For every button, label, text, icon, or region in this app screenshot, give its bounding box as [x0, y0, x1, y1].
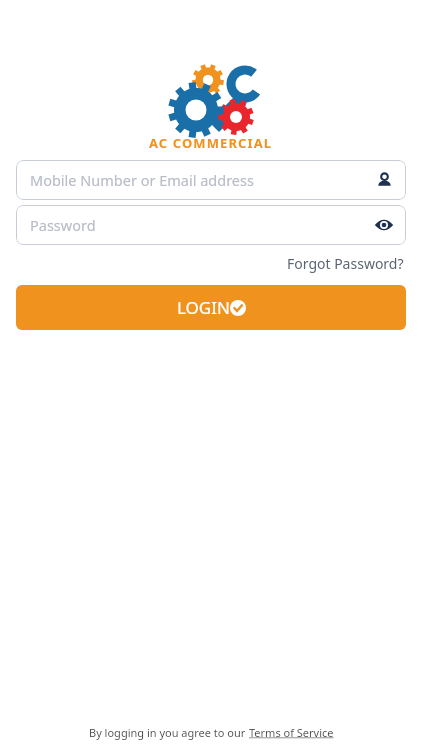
- staticText: By logging in you agree to our: [89, 725, 249, 740]
- staticText: LOGIN: [177, 296, 230, 319]
- staticText: Mobile Number or Email address: [30, 170, 375, 190]
- button[interactable]: Forgot Password?: [285, 251, 406, 276]
- button[interactable]: Terms of Service: [249, 725, 334, 740]
- staticText: Password: [30, 215, 374, 235]
- button[interactable]: Show password: [374, 215, 394, 235]
- staticText: AC COMMERCIAL: [149, 134, 273, 152]
- staticText: Forgot Password?: [287, 254, 404, 273]
- button[interactable]: Password: [16, 205, 406, 245]
- staticText: Terms of Service: [249, 725, 334, 740]
- button[interactable]: LOGIN: [16, 285, 406, 330]
- button[interactable]: Mobile Number or Email address: [16, 160, 406, 200]
